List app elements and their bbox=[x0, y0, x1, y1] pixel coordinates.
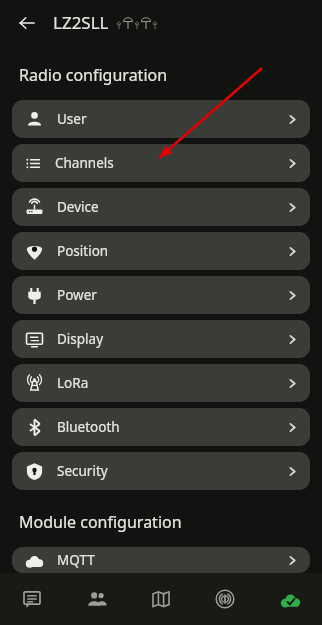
button[interactable]: Messages bbox=[0, 573, 64, 625]
button[interactable]: User bbox=[12, 100, 310, 138]
staticText: Module configuration bbox=[19, 511, 182, 533]
button[interactable]: Settings bbox=[258, 573, 322, 625]
staticText: Security bbox=[57, 462, 286, 480]
staticText: Bluetooth bbox=[57, 418, 286, 436]
staticText: Radio configuration bbox=[19, 64, 168, 86]
staticText: Power bbox=[57, 286, 286, 304]
staticText: Display bbox=[57, 330, 286, 348]
button[interactable]: Map bbox=[129, 573, 193, 625]
staticText: Device bbox=[57, 198, 286, 216]
button[interactable]: Position bbox=[12, 232, 310, 270]
staticText: LZ2SLL bbox=[53, 11, 109, 34]
button[interactable]: Device bbox=[12, 188, 310, 226]
button[interactable]: Radio bbox=[193, 573, 257, 625]
button[interactable]: MQTT bbox=[12, 547, 310, 573]
button[interactable]: Security bbox=[12, 452, 310, 490]
button[interactable]: Channels bbox=[12, 144, 310, 182]
button[interactable]: Display bbox=[12, 320, 310, 358]
staticText: Position bbox=[57, 242, 286, 260]
staticText: MQTT bbox=[57, 551, 286, 569]
button[interactable]: Back bbox=[12, 8, 42, 38]
button[interactable]: Power bbox=[12, 276, 310, 314]
staticText: LoRa bbox=[57, 374, 286, 392]
staticText: Channels bbox=[55, 154, 286, 172]
staticText: User bbox=[57, 110, 286, 128]
button[interactable]: Bluetooth bbox=[12, 408, 310, 446]
button[interactable]: LoRa bbox=[12, 364, 310, 402]
button[interactable]: Contacts bbox=[65, 573, 129, 625]
